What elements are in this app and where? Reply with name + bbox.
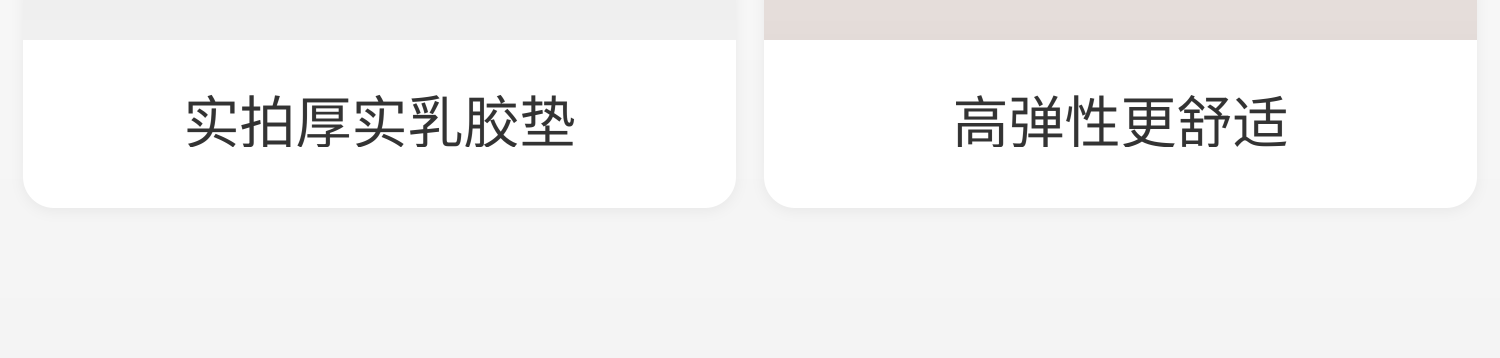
staticText: 高弹性更舒适 (952, 77, 1288, 159)
staticText: 实拍厚实乳胶垫 (183, 77, 575, 159)
button[interactable]: 实拍厚实乳胶垫 (23, 0, 736, 256)
button[interactable]: 高弹性更舒适 (764, 0, 1477, 256)
